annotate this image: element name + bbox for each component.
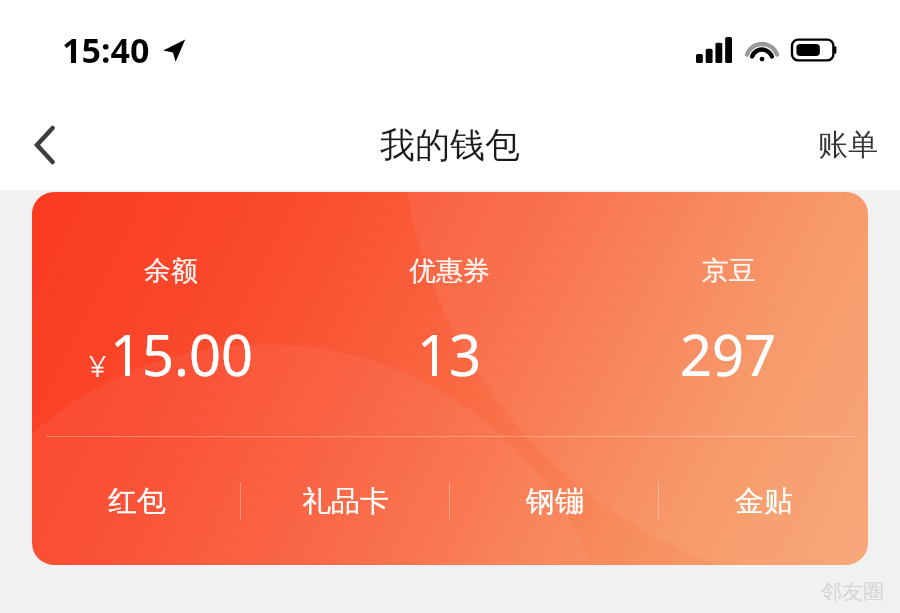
button[interactable]: 金贴 [659,437,868,565]
staticText: 账单 [818,126,878,164]
button[interactable]: Back [0,100,90,190]
staticText: 礼品卡 [302,483,389,520]
button[interactable]: 钢镚 [450,437,659,565]
button[interactable]: 优惠券 [310,254,589,392]
button[interactable]: 红包 [32,437,241,565]
staticText: 京豆 [702,254,756,288]
staticText: 我的钱包 [380,123,520,167]
staticText: 297 [680,316,777,392]
staticText: 余额 [144,254,198,288]
staticText: 13 [417,316,482,392]
staticText: 15.00 [110,316,254,392]
staticText: ¥ [89,345,107,386]
staticText: 金贴 [735,483,793,520]
staticText: 优惠券 [409,254,490,288]
staticText: 红包 [108,483,166,520]
button[interactable]: 余额 [32,254,310,392]
button[interactable]: 礼品卡 [241,437,450,565]
staticText: 15:40 [62,27,150,73]
staticText: 钢镚 [526,483,584,520]
button[interactable]: 京豆 [589,254,868,392]
staticText: 邻友圈 [821,579,884,605]
button[interactable]: 账单 [796,100,900,190]
